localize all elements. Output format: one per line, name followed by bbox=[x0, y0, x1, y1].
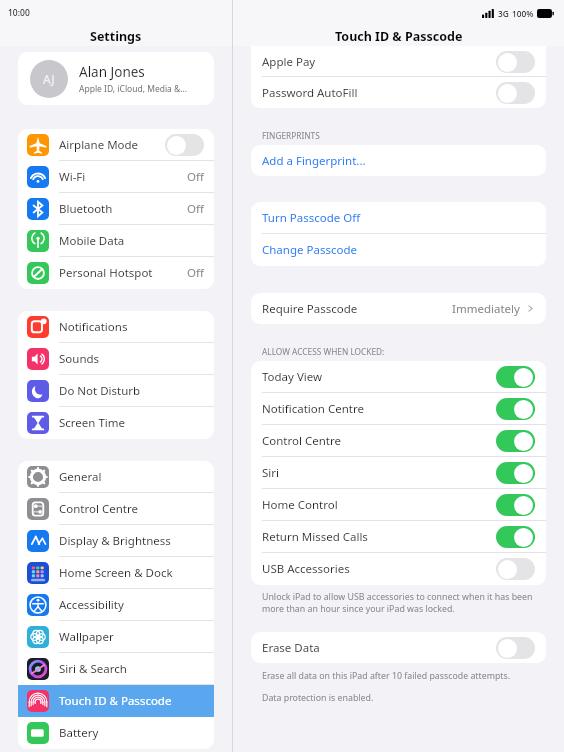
staticText: Wi-Fi bbox=[59, 169, 187, 185]
button[interactable]: Home Control bbox=[251, 489, 546, 521]
staticText: Settings bbox=[90, 28, 142, 45]
staticText: Home Screen & Dock bbox=[59, 565, 204, 581]
button[interactable]: Bluetooth bbox=[18, 193, 214, 225]
button[interactable]: On bbox=[496, 398, 535, 420]
staticText: Apple ID, iCloud, Media &... bbox=[79, 83, 188, 95]
staticText: Screen Time bbox=[59, 415, 204, 431]
button[interactable]: Off bbox=[496, 82, 535, 104]
button[interactable]: Screen Time bbox=[18, 407, 214, 439]
button[interactable]: Home Screen & Dock bbox=[18, 557, 214, 589]
staticText: Notification Centre bbox=[262, 401, 496, 417]
staticText: AJ bbox=[43, 71, 55, 87]
staticText: Data protection is enabled. bbox=[262, 692, 374, 704]
button[interactable]: Display & Brightness bbox=[18, 525, 214, 557]
staticText: Require Passcode bbox=[262, 301, 452, 317]
staticText: Unlock iPad to allow USB accessories to … bbox=[262, 591, 540, 615]
button[interactable]: Off bbox=[165, 134, 204, 156]
button[interactable]: Control Centre bbox=[18, 493, 214, 525]
button[interactable]: Add a Fingerprint... bbox=[251, 145, 546, 176]
staticText: Personal Hotspot bbox=[59, 265, 187, 281]
button[interactable]: Mobile Data bbox=[18, 225, 214, 257]
staticText: Home Control bbox=[262, 497, 496, 513]
button[interactable]: Notification Centre bbox=[251, 393, 546, 425]
button[interactable]: Wallpaper bbox=[18, 621, 214, 653]
staticText: Change Passcode bbox=[262, 242, 535, 258]
staticText: Battery bbox=[59, 725, 204, 741]
button[interactable]: Off bbox=[496, 637, 535, 659]
button[interactable]: Apple Pay bbox=[251, 46, 546, 77]
button[interactable]: Off bbox=[496, 558, 535, 580]
staticText: Touch ID & Passcode bbox=[335, 28, 463, 45]
button[interactable]: Airplane Mode bbox=[18, 129, 214, 161]
button[interactable]: On bbox=[496, 462, 535, 484]
staticText: Siri bbox=[262, 465, 496, 481]
button[interactable]: Wi-Fi bbox=[18, 161, 214, 193]
staticText: Erase all data on this iPad after 10 fai… bbox=[262, 670, 511, 682]
staticText: Off bbox=[187, 201, 204, 217]
button[interactable]: On bbox=[496, 526, 535, 548]
button[interactable]: Erase Data bbox=[251, 632, 546, 663]
button[interactable]: Password AutoFill bbox=[251, 77, 546, 108]
staticText: Turn Passcode Off bbox=[262, 210, 535, 226]
staticText: FINGERPRINTS bbox=[262, 130, 320, 141]
staticText: Mobile Data bbox=[59, 233, 204, 249]
button[interactable]: Touch ID & Passcode bbox=[18, 685, 214, 717]
button[interactable]: Require Passcode bbox=[251, 293, 546, 324]
button[interactable]: Turn Passcode Off bbox=[251, 202, 546, 234]
button[interactable]: General bbox=[18, 461, 214, 493]
button[interactable]: Siri & Search bbox=[18, 653, 214, 685]
staticText: Alan Jones bbox=[79, 63, 145, 81]
staticText: Control Centre bbox=[59, 501, 204, 517]
button[interactable]: Do Not Disturb bbox=[18, 375, 214, 407]
staticText: 100% bbox=[512, 8, 534, 19]
button[interactable]: Notifications bbox=[18, 311, 214, 343]
staticText: Touch ID & Passcode bbox=[59, 693, 204, 709]
staticText: Wallpaper bbox=[59, 629, 204, 645]
staticText: Immediately bbox=[452, 301, 520, 317]
staticText: USB Accessories bbox=[262, 561, 496, 577]
staticText: Today View bbox=[262, 369, 496, 385]
button[interactable]: Off bbox=[496, 51, 535, 73]
staticText: Display & Brightness bbox=[59, 533, 204, 549]
staticText: Return Missed Calls bbox=[262, 529, 496, 545]
button[interactable]: USB Accessories bbox=[251, 553, 546, 585]
button[interactable]: Battery bbox=[18, 717, 214, 749]
staticText: Password AutoFill bbox=[262, 85, 496, 101]
button[interactable]: Siri bbox=[251, 457, 546, 489]
staticText: Control Centre bbox=[262, 433, 496, 449]
button[interactable]: On bbox=[496, 494, 535, 516]
staticText: Bluetooth bbox=[59, 201, 187, 217]
button[interactable]: Today View bbox=[251, 361, 546, 393]
staticText: Off bbox=[187, 265, 204, 281]
button[interactable]: Sounds bbox=[18, 343, 214, 375]
staticText: Erase Data bbox=[262, 640, 496, 656]
staticText: General bbox=[59, 469, 204, 485]
staticText: Do Not Disturb bbox=[59, 383, 204, 399]
staticText: 3G bbox=[498, 8, 509, 19]
button[interactable]: On bbox=[496, 430, 535, 452]
staticText: Accessibility bbox=[59, 597, 204, 613]
staticText: Off bbox=[187, 169, 204, 185]
staticText: Apple Pay bbox=[262, 54, 496, 70]
staticText: Siri & Search bbox=[59, 661, 204, 677]
button[interactable]: Change Passcode bbox=[251, 234, 546, 266]
staticText: Add a Fingerprint... bbox=[262, 153, 535, 169]
staticText: Airplane Mode bbox=[59, 137, 165, 153]
staticText: Sounds bbox=[59, 351, 204, 367]
button[interactable]: Accessibility bbox=[18, 589, 214, 621]
button[interactable]: AJ bbox=[18, 52, 214, 105]
button[interactable]: Control Centre bbox=[251, 425, 546, 457]
button[interactable]: Personal Hotspot bbox=[18, 257, 214, 289]
staticText: Notifications bbox=[59, 319, 204, 335]
staticText: 10:00 bbox=[8, 7, 30, 19]
button[interactable]: On bbox=[496, 366, 535, 388]
staticText: ALLOW ACCESS WHEN LOCKED: bbox=[262, 346, 385, 357]
button[interactable]: Return Missed Calls bbox=[251, 521, 546, 553]
